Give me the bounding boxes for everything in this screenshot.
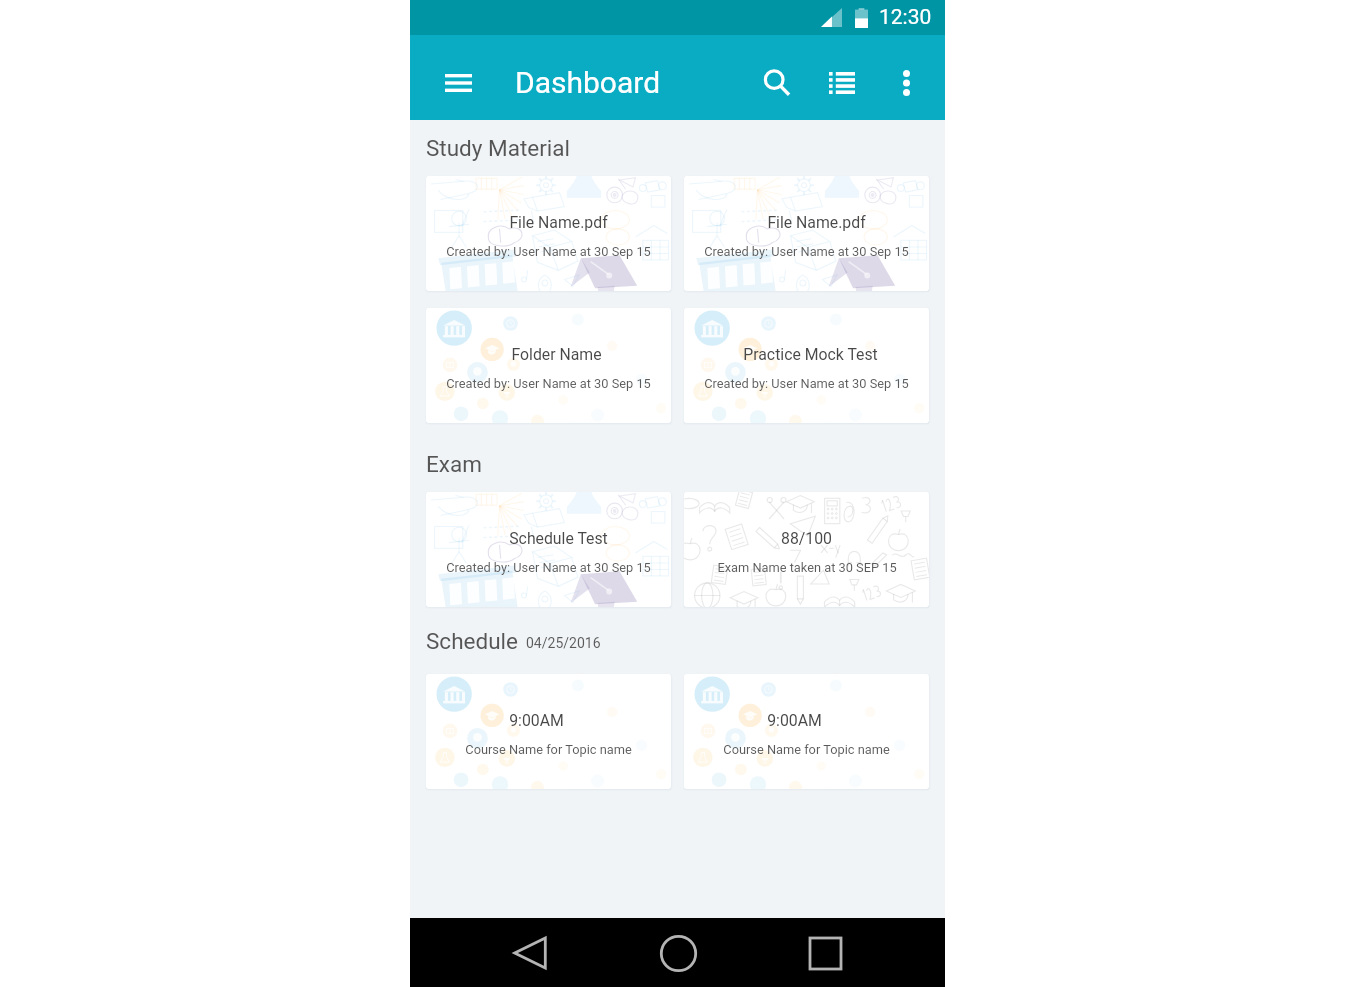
staticText: Exam Name taken at 30 SEP 15 <box>717 560 897 575</box>
staticText: Course Name for Topic name <box>465 742 632 757</box>
staticText: Schedule Test <box>509 529 608 548</box>
staticText: 12:30 <box>879 5 932 30</box>
staticText: Exam <box>426 451 482 477</box>
button[interactable]: File Name.pdf <box>684 176 929 291</box>
staticText: 04/25/2016 <box>526 635 601 651</box>
staticText: Dashboard <box>515 65 661 100</box>
staticText: Study Material <box>426 135 571 161</box>
button[interactable]: Back <box>502 925 558 981</box>
staticText: Course Name for Topic name <box>723 742 890 757</box>
staticText: Created by: User Name at 30 Sep 15 <box>446 560 651 575</box>
staticText: File Name.pdf <box>509 213 608 232</box>
staticText: Folder Name <box>511 345 602 364</box>
button[interactable]: Schedule Test <box>426 492 671 607</box>
button[interactable]: Search <box>753 59 801 107</box>
button[interactable]: Folder Name <box>426 308 671 423</box>
button[interactable]: 9:00AM <box>684 674 929 789</box>
button[interactable]: More options <box>882 59 930 107</box>
button[interactable]: List view <box>818 59 866 107</box>
staticText: File Name.pdf <box>767 213 866 232</box>
staticText: 88/100 <box>781 529 832 548</box>
button[interactable]: Practice Mock Test <box>684 308 929 423</box>
button[interactable]: File Name.pdf <box>426 176 671 291</box>
staticText: 9:00AM <box>509 711 564 730</box>
staticText: 9:00AM <box>767 711 822 730</box>
button[interactable]: 9:00AM <box>426 674 671 789</box>
staticText: Practice Mock Test <box>743 345 878 364</box>
staticText: Created by: User Name at 30 Sep 15 <box>704 244 909 259</box>
button[interactable]: Home <box>650 925 706 981</box>
staticText: Created by: User Name at 30 Sep 15 <box>446 376 651 391</box>
staticText: Schedule <box>426 628 518 654</box>
button[interactable]: Open navigation menu <box>436 61 480 105</box>
staticText: Created by: User Name at 30 Sep 15 <box>446 244 651 259</box>
staticText: Created by: User Name at 30 Sep 15 <box>704 376 909 391</box>
button[interactable]: Recent apps <box>797 925 853 981</box>
button[interactable]: 88/100 <box>684 492 929 607</box>
